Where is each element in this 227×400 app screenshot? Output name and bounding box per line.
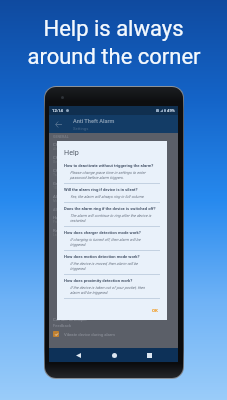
staticText: Anti Theft Alarm <box>73 118 115 125</box>
staticText: The alarm will continue to ring after th… <box>70 213 152 223</box>
staticText: How does charger detection mode work? <box>64 230 141 235</box>
staticText: Feedback <box>53 323 72 328</box>
staticText: How does proximity detection work? <box>64 278 133 283</box>
button[interactable]: Vibrate device during alarm <box>53 331 178 337</box>
staticText: Contact developer <box>53 317 87 322</box>
staticText: If charging is turned off, then alarm wi… <box>70 237 152 247</box>
button[interactable]: Back <box>71 348 85 362</box>
staticText: around the corner <box>27 44 201 70</box>
staticText: 12:14 <box>52 108 63 113</box>
staticText: OK <box>152 308 158 313</box>
staticText: Please change grace time in settings to … <box>70 170 152 180</box>
staticText: Alarm volume <box>53 194 79 199</box>
staticText: Change password <box>53 168 87 173</box>
staticText: Alarm when charger is unplugged <box>53 147 104 151</box>
button[interactable]: Recents <box>142 348 156 362</box>
staticText: Vibrate device during alarm <box>64 332 115 337</box>
staticText: If the device is moved, then alarm will … <box>70 261 152 271</box>
staticText: Help <box>64 148 79 156</box>
staticText: Does the alarm ring if the device is swi… <box>64 206 156 211</box>
staticText: Help is always <box>43 16 184 42</box>
staticText: Tap to set a new password <box>53 173 94 177</box>
staticText: Choose alarm tone <box>53 155 89 160</box>
staticText: Grace period <box>53 181 77 186</box>
staticText: Leave a review on the store <box>53 233 94 237</box>
staticText: Rate this app <box>53 228 78 233</box>
staticText: Default ringtone <box>53 160 78 164</box>
staticText: How to deactivate without triggering the… <box>64 163 154 168</box>
staticText: 10 seconds <box>53 186 71 190</box>
staticText: Will the alarm ring if device is in sile… <box>64 187 138 192</box>
staticText: ABOUT <box>53 208 65 212</box>
button[interactable]: Back <box>49 115 67 133</box>
staticText: Charger detection <box>53 142 87 147</box>
staticText: Yes, the alarm will always ring in full … <box>70 194 145 199</box>
staticText: If the device is taken out of your pocke… <box>70 285 152 295</box>
staticText: Settings <box>73 126 89 131</box>
staticText: Help <box>53 215 62 220</box>
button[interactable]: Home <box>107 348 121 362</box>
staticText: GENERAL <box>53 135 69 139</box>
button[interactable]: OK <box>150 306 160 315</box>
staticText: 49% <box>167 108 175 113</box>
staticText: Frequently asked questions <box>53 220 95 224</box>
staticText: Maximum <box>53 199 69 203</box>
staticText: How does motion detection mode work? <box>64 254 140 259</box>
